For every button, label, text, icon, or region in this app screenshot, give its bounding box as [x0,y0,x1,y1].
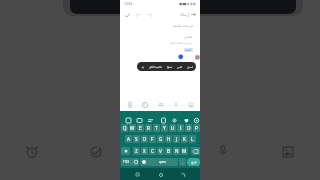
button[interactable]: Q [121,124,128,132]
staticText: Y [163,125,166,131]
staticText: X [143,148,146,154]
staticText: I [180,125,182,131]
button[interactable]: . [179,158,186,166]
button[interactable]: J [173,135,180,143]
button[interactable]: Mic [171,100,180,109]
staticText: L [191,136,194,142]
staticText: E [139,125,142,131]
staticText: C [151,148,154,154]
button[interactable]: O [185,124,192,132]
staticText: M [182,148,187,154]
button[interactable]: W [129,124,136,132]
staticText: H [167,136,171,142]
button[interactable]: H [165,135,172,143]
staticText: V [159,148,162,154]
staticText: كتابة [185,48,192,52]
staticText: Q [123,125,127,131]
button[interactable]: N [173,147,180,155]
button[interactable]: F [149,135,156,143]
button[interactable]: S [133,135,140,143]
staticText: A [127,136,130,142]
staticText: K [183,136,186,142]
button[interactable]: Format [156,100,165,109]
staticText: B [167,148,170,154]
button[interactable]: Y [161,124,168,132]
staticText: Z [135,148,138,154]
button[interactable]: Z [133,147,140,155]
button[interactable]: kbtool1 [135,116,144,125]
button[interactable]: kbtool5 [182,116,191,125]
button[interactable]: Voice note [210,138,236,164]
button[interactable]: X [141,147,148,155]
staticText: . [182,160,183,165]
staticText: إرسال [180,13,189,17]
button[interactable]: Undo [134,11,142,19]
button[interactable]: M [181,147,188,155]
button[interactable]: Emoji [132,158,139,166]
staticText: O [187,125,191,131]
button[interactable]: نسخ [167,65,173,68]
button[interactable]: space [147,158,178,166]
button[interactable]: Image [275,139,301,165]
button[interactable]: Back [178,170,187,179]
staticText: G [159,136,163,142]
button[interactable]: Language [140,158,147,166]
staticText: W [130,125,135,131]
button[interactable]: R [145,124,152,132]
button[interactable]: B [165,147,172,155]
button[interactable]: Palette [140,100,149,109]
button[interactable]: kbtool2 [146,116,155,125]
button[interactable]: E [137,124,144,132]
button[interactable]: K [181,135,188,143]
button[interactable]: Reminder [19,139,45,165]
button[interactable]: P [193,124,200,132]
button[interactable]: U [169,124,176,132]
staticText: N [175,148,179,154]
staticText: D [143,136,147,142]
staticText: F [151,136,154,142]
button[interactable]: G [157,135,164,143]
staticText: تحياتي [184,35,193,39]
staticText: P [195,125,198,131]
button[interactable]: Recents [133,170,142,179]
button[interactable]: Checklist [83,139,109,165]
button[interactable]: T [153,124,160,132]
button[interactable]: قص [177,65,182,68]
staticText: R [147,125,150,131]
staticText: ?123 [123,160,130,164]
staticText: 10:54 [124,2,133,6]
button[interactable]: Undo [125,100,134,109]
button[interactable]: لصق [187,65,193,68]
button[interactable]: Home [156,170,165,179]
button[interactable]: Enter [187,158,200,166]
staticText: space [159,160,167,164]
button[interactable]: kbtool4 [170,116,179,125]
button[interactable]: L [189,135,196,143]
button[interactable]: kbtool0 [124,116,133,125]
button[interactable]: Image [186,100,195,109]
button[interactable]: إرسال [180,12,196,17]
staticText: J [176,136,178,142]
button[interactable]: Shift [121,147,130,155]
button[interactable]: ?123 [121,158,132,166]
button[interactable]: C [149,147,156,155]
button[interactable]: kbtool6 [192,116,201,125]
button[interactable]: تحديد الكل [149,65,162,69]
button[interactable]: kbtool3 [159,116,168,125]
button[interactable]: Done [123,11,131,19]
button[interactable]: D [141,135,148,143]
staticText: بخصوص الطلب الذي [170,41,193,45]
button[interactable]: A [125,135,132,143]
staticText: T [155,125,158,131]
button[interactable]: V [157,147,164,155]
button[interactable]: More [140,65,144,69]
button[interactable]: Backspace [191,147,200,155]
staticText: S [135,136,138,142]
button[interactable]: Redo [145,11,153,19]
staticText: الرسالة مكتملة [173,24,193,28]
staticText: U [171,125,175,131]
button[interactable]: I [177,124,184,132]
